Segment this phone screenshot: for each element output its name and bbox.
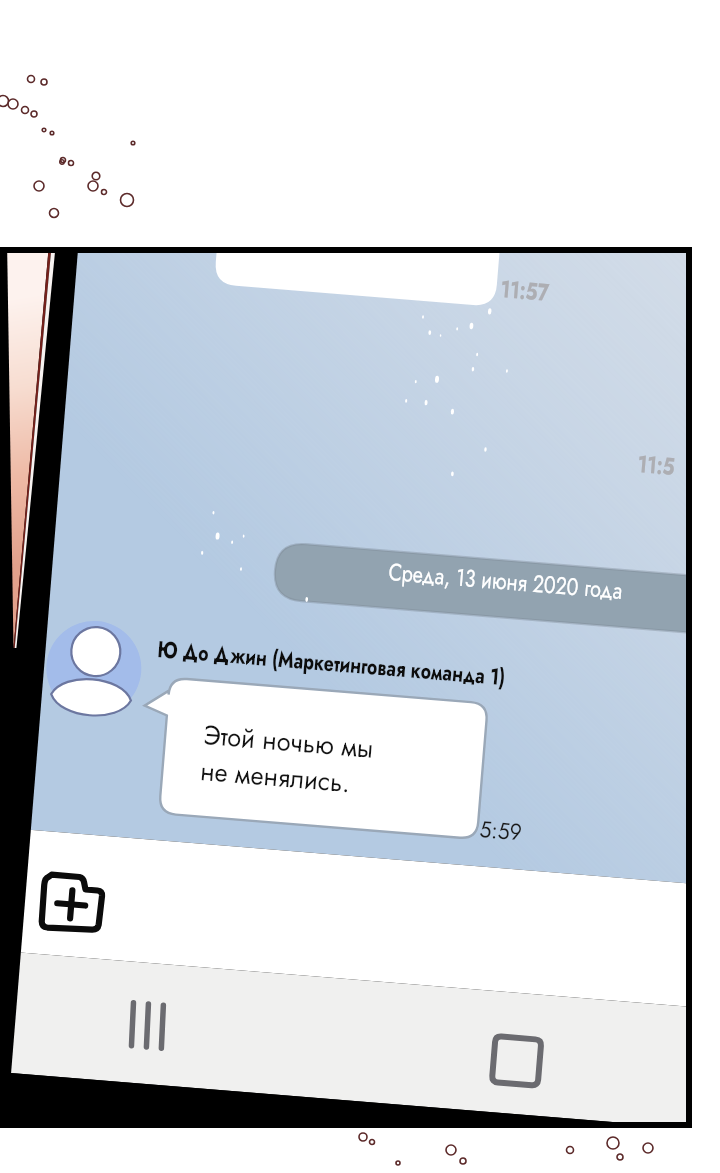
staticText: 11:5 (636, 446, 676, 484)
staticText: Ю До Джин (Маркетинговая команда 1) (156, 632, 507, 693)
staticText: Этой ночью мы (202, 715, 375, 768)
button[interactable]: Add attachment (40, 868, 107, 937)
staticText: Среда, 13 июня 2020 года (387, 554, 624, 608)
button[interactable]: Среда, 13 июня 2020 года (264, 533, 697, 634)
staticText: не менялись. (199, 751, 352, 802)
button[interactable]: Message from Ю До Джин (154, 673, 492, 843)
staticText: 11:57 (499, 271, 551, 310)
button[interactable]: Profile picture (42, 618, 146, 721)
button[interactable]: Recent apps (117, 994, 180, 1058)
button[interactable]: Home (485, 1030, 548, 1092)
staticText: 5:59 (478, 812, 524, 848)
